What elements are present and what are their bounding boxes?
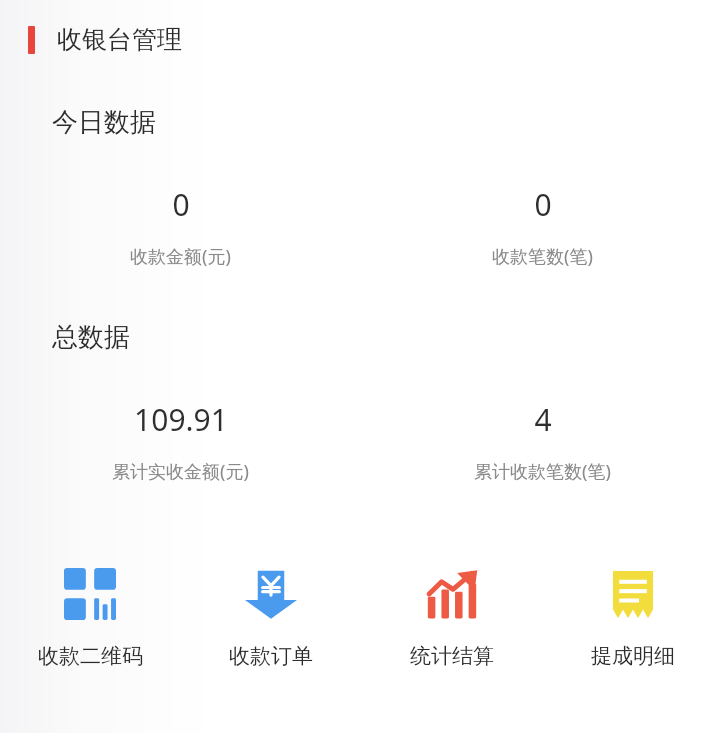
button[interactable]: 收款二维码	[0, 567, 180, 669]
staticText: 收款二维码	[38, 643, 143, 669]
staticText: 收款笔数(笔)	[492, 244, 593, 269]
button[interactable]: 0	[361, 184, 723, 269]
button[interactable]: 收银台管理	[0, 24, 723, 55]
staticText: 0	[172, 184, 190, 225]
staticText: 收款订单	[229, 643, 313, 669]
staticText: 提成明细	[591, 643, 675, 669]
button[interactable]: 提成明细	[542, 567, 723, 669]
staticText: 累计实收金额(元)	[112, 459, 249, 484]
staticText: 累计收款笔数(笔)	[474, 459, 611, 484]
button[interactable]: 4	[361, 399, 723, 484]
staticText: 0	[534, 184, 552, 225]
staticText: 4	[534, 399, 552, 440]
staticText: 收款金额(元)	[130, 244, 231, 269]
button[interactable]: 收款订单	[180, 567, 361, 669]
staticText: 总数据	[52, 321, 130, 354]
staticText: 统计结算	[410, 643, 494, 669]
staticText: 今日数据	[52, 106, 156, 139]
button[interactable]: 109.91	[0, 399, 361, 484]
button[interactable]: 统计结算	[361, 567, 542, 669]
staticText: 109.91	[134, 399, 228, 440]
staticText: 收银台管理	[57, 24, 182, 55]
button[interactable]: 0	[0, 184, 361, 269]
